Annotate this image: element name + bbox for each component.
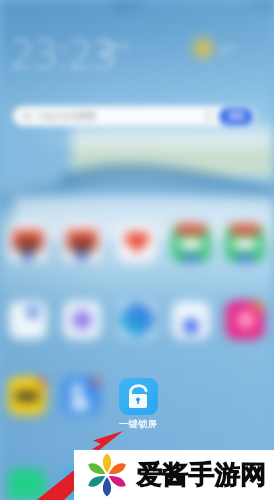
staticText: 小说大全免费看 [37,111,97,122]
staticText: 27° [218,42,237,58]
button[interactable]: App icon [118,301,156,339]
button[interactable]: 小说大全免费看 [13,106,256,126]
button[interactable]: App icon [172,301,210,339]
staticText: 11月6日 周三 [100,40,130,60]
button[interactable]: App icon [226,301,264,339]
button[interactable]: App icon [9,301,47,339]
staticText: 23:23 [10,24,117,81]
button[interactable]: App icon [63,301,101,339]
staticText: 一键锁屏 [119,418,157,430]
staticText: 搜索 [228,111,245,122]
button[interactable]: App icon [172,224,210,262]
button[interactable]: App icon [8,377,46,415]
button[interactable]: 一键锁屏 [119,378,158,415]
button[interactable]: App icon [63,224,101,262]
button[interactable]: App icon [62,377,100,415]
button[interactable]: App icon [226,224,264,262]
button[interactable]: App icon [9,224,47,262]
staticText: 爱酱手游网 [136,459,266,492]
button[interactable]: 搜索 [219,108,253,125]
button[interactable]: App icon [118,224,156,262]
